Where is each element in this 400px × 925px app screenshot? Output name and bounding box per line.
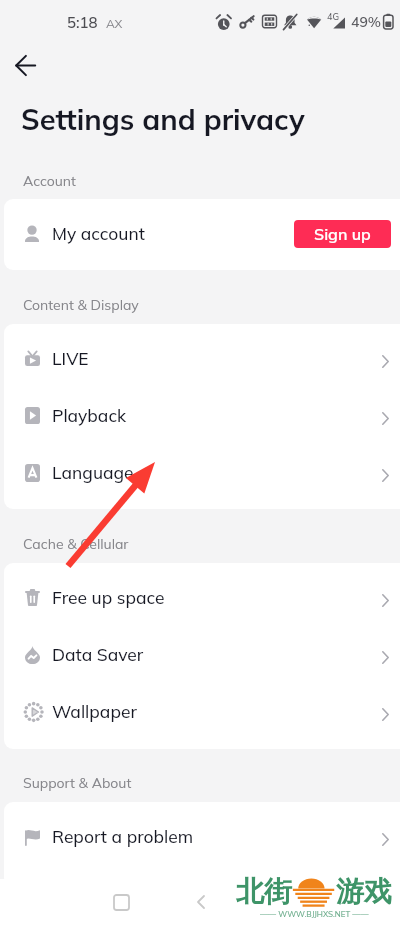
button[interactable]: Free up space [4,569,400,626]
button[interactable]: Report a problem [4,808,400,865]
staticText: —— WWW.BJJHXS.NET —— [260,909,369,919]
button[interactable]: Wallpaper [4,683,400,740]
button[interactable]: Playback [4,387,400,444]
button[interactable]: Language [4,444,400,501]
staticText: Data Saver [52,644,144,666]
staticText: Settings and privacy [21,101,305,137]
staticText: Sign up [314,224,371,244]
staticText: Wallpaper [52,701,137,723]
staticText: Language [52,462,134,484]
button[interactable]: Back [9,49,41,81]
staticText: Cache & Cellular [23,535,129,553]
staticText: 北街 [236,874,292,909]
button[interactable]: Back [186,887,216,917]
staticText: Report a problem [52,826,194,848]
button[interactable]: My account [4,205,400,263]
staticText: Free up space [52,587,165,609]
staticText: Account [23,172,76,190]
button[interactable]: Sign up [294,220,391,248]
button[interactable]: Data Saver [4,626,400,683]
staticText: Content & Display [23,296,139,314]
staticText: 49% [351,13,382,31]
staticText: 5:18 [67,13,98,32]
staticText: My account [52,223,145,245]
staticText: 游戏 [336,874,392,909]
staticText: Playback [52,405,127,427]
staticText: 4G [327,11,339,22]
staticText: AX [106,16,123,31]
button[interactable]: LIVE [4,330,400,387]
staticText: LIVE [52,348,89,370]
staticText: Support & About [23,774,132,792]
button[interactable]: Recent apps [106,887,136,917]
